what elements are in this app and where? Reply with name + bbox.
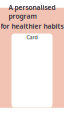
staticText: Card (26, 34, 37, 41)
staticText: for healthier habits (0, 22, 63, 31)
staticText: A personalised program (8, 3, 55, 21)
